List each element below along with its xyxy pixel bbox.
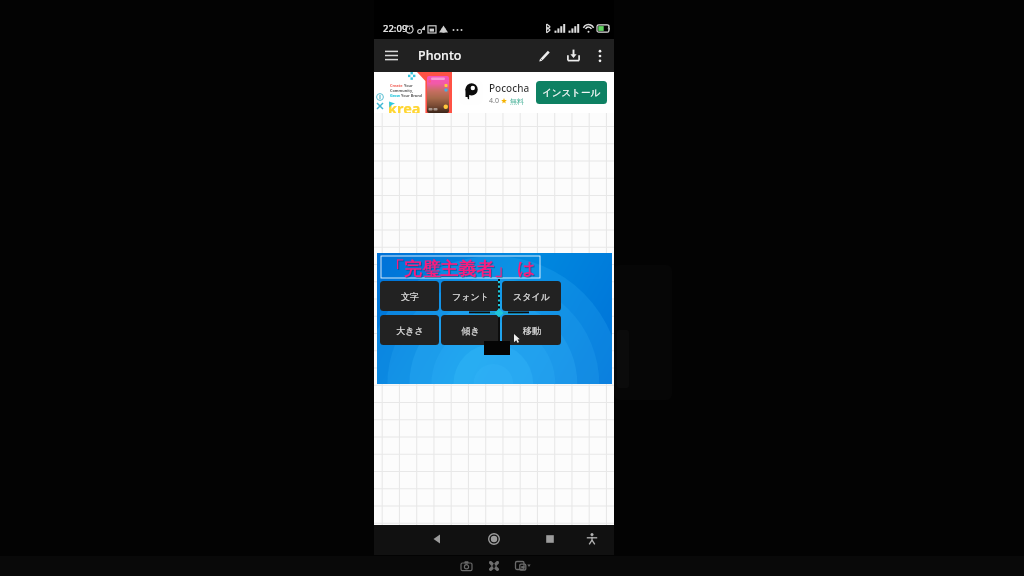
staticText: Your Brand	[401, 93, 422, 98]
staticText: 大きさ	[396, 325, 424, 336]
staticText: 無料	[510, 97, 524, 106]
button[interactable]: More options	[587, 39, 612, 72]
button[interactable]: Screenshot	[456, 556, 476, 576]
button[interactable]: 傾き	[441, 315, 500, 345]
button[interactable]: 文字	[380, 281, 439, 311]
button[interactable]: 移動	[502, 315, 561, 345]
staticText: Pococha	[489, 81, 530, 95]
staticText: Your	[404, 83, 413, 88]
staticText: インストール	[542, 87, 601, 99]
staticText: Community,	[390, 88, 414, 93]
button[interactable]: Display mode	[511, 556, 535, 576]
staticText: スタイル	[513, 291, 550, 302]
staticText: 「完璧主義者」 は	[386, 256, 536, 278]
staticText: フォント	[452, 291, 489, 302]
staticText: Create	[390, 83, 404, 88]
staticText: krea	[388, 98, 421, 118]
button[interactable]: インストール	[536, 81, 607, 104]
staticText: Grow	[390, 93, 401, 98]
button[interactable]: Recent apps	[539, 528, 561, 550]
button[interactable]: Home	[483, 528, 505, 550]
staticText: 移動	[523, 325, 541, 336]
button[interactable]	[459, 80, 483, 105]
button[interactable]: Expand	[484, 556, 504, 576]
button[interactable]: フォント	[441, 281, 500, 311]
staticText: 傾き	[461, 325, 480, 336]
button[interactable]: Accessibility	[581, 528, 603, 550]
button[interactable]: スタイル	[502, 281, 561, 311]
staticText: 文字	[401, 291, 419, 302]
staticText: 「完璧主義者」 は	[387, 257, 537, 279]
staticText: Phonto	[418, 47, 462, 64]
button[interactable]: Create	[382, 72, 452, 113]
button[interactable]: Navigation menu	[376, 39, 406, 72]
button[interactable]: Back	[427, 528, 449, 550]
staticText: 22:09	[383, 22, 408, 35]
button[interactable]: Edit text	[529, 39, 559, 72]
button[interactable]: Ad info	[376, 93, 384, 101]
button[interactable]: Close ad	[376, 102, 384, 110]
button[interactable]: Save image	[558, 39, 588, 72]
button[interactable]: 大きさ	[380, 315, 439, 345]
staticText: 4.0	[489, 96, 499, 106]
